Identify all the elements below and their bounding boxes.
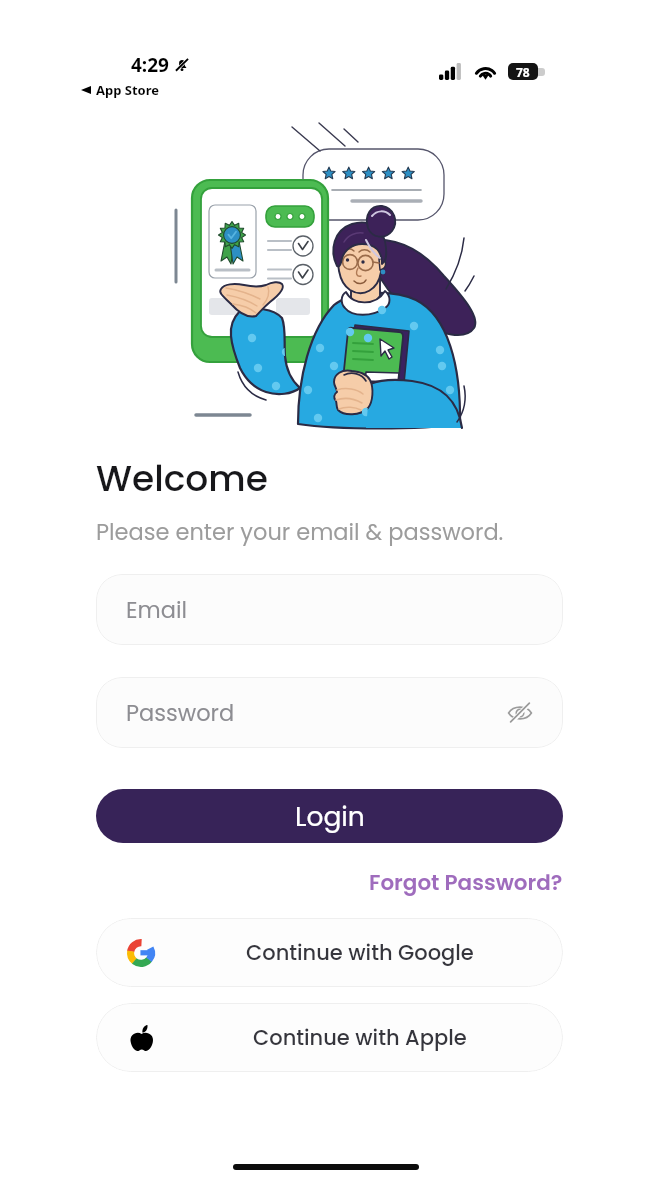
- button[interactable]: Continue with Google: [96, 918, 563, 987]
- staticText: Welcome: [96, 453, 268, 503]
- staticText: Continue with Apple: [253, 1023, 467, 1052]
- staticText: Email: [126, 594, 187, 625]
- staticText: Password: [126, 697, 235, 728]
- staticText: 4:29: [131, 52, 169, 78]
- staticText: Please enter your email & password.: [96, 516, 504, 547]
- staticText: Login: [295, 798, 365, 835]
- staticText: Continue with Google: [246, 938, 474, 967]
- other: Show password: [507, 700, 533, 726]
- button[interactable]: Forgot Password?: [369, 867, 563, 897]
- button[interactable]: Login: [96, 789, 563, 843]
- button[interactable]: Email: [96, 574, 563, 645]
- staticText: 78: [516, 64, 530, 80]
- staticText: App Store: [96, 81, 160, 99]
- button[interactable]: Password: [96, 677, 563, 748]
- button[interactable]: Continue with Apple: [96, 1003, 563, 1072]
